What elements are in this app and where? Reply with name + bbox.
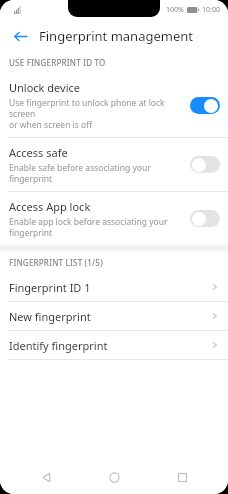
button[interactable]: Access safe bbox=[0, 138, 228, 191]
button[interactable]: Home bbox=[92, 460, 136, 494]
staticText: Fingerprint management bbox=[39, 27, 193, 45]
button[interactable]: Access App lock bbox=[0, 192, 228, 245]
button[interactable]: Fingerprint ID 1 bbox=[0, 273, 228, 301]
staticText: Access safe bbox=[9, 145, 68, 160]
staticText: Unlock device bbox=[9, 80, 81, 95]
button[interactable]: New fingerprint bbox=[0, 302, 228, 330]
button[interactable]: Unlock device bbox=[0, 73, 228, 137]
button[interactable]: Identify fingerprint bbox=[0, 331, 228, 359]
staticText: 10:00 bbox=[202, 5, 220, 15]
staticText: USE FINGERPRINT ID TO bbox=[9, 57, 106, 68]
button[interactable]: Back bbox=[5, 21, 35, 51]
staticText: FINGERPRINT LIST (1/5) bbox=[9, 257, 103, 268]
button[interactable]: Toggle off bbox=[190, 210, 220, 227]
staticText: Enable app lock before associating your … bbox=[9, 216, 168, 238]
button[interactable]: Back bbox=[24, 460, 68, 494]
button[interactable]: Recent apps bbox=[160, 460, 204, 494]
staticText: Fingerprint ID 1 bbox=[9, 280, 211, 295]
staticText: 100% bbox=[166, 5, 184, 15]
staticText: Identify fingerprint bbox=[9, 338, 211, 353]
staticText: New fingerprint bbox=[9, 309, 211, 324]
staticText: Access App lock bbox=[9, 199, 91, 214]
button[interactable]: Toggle on bbox=[190, 97, 220, 114]
button[interactable]: Toggle off bbox=[190, 156, 220, 173]
staticText: Enable safe before associating your fing… bbox=[9, 162, 151, 184]
staticText: Use fingerprint to unlock phone at lock … bbox=[9, 97, 184, 130]
